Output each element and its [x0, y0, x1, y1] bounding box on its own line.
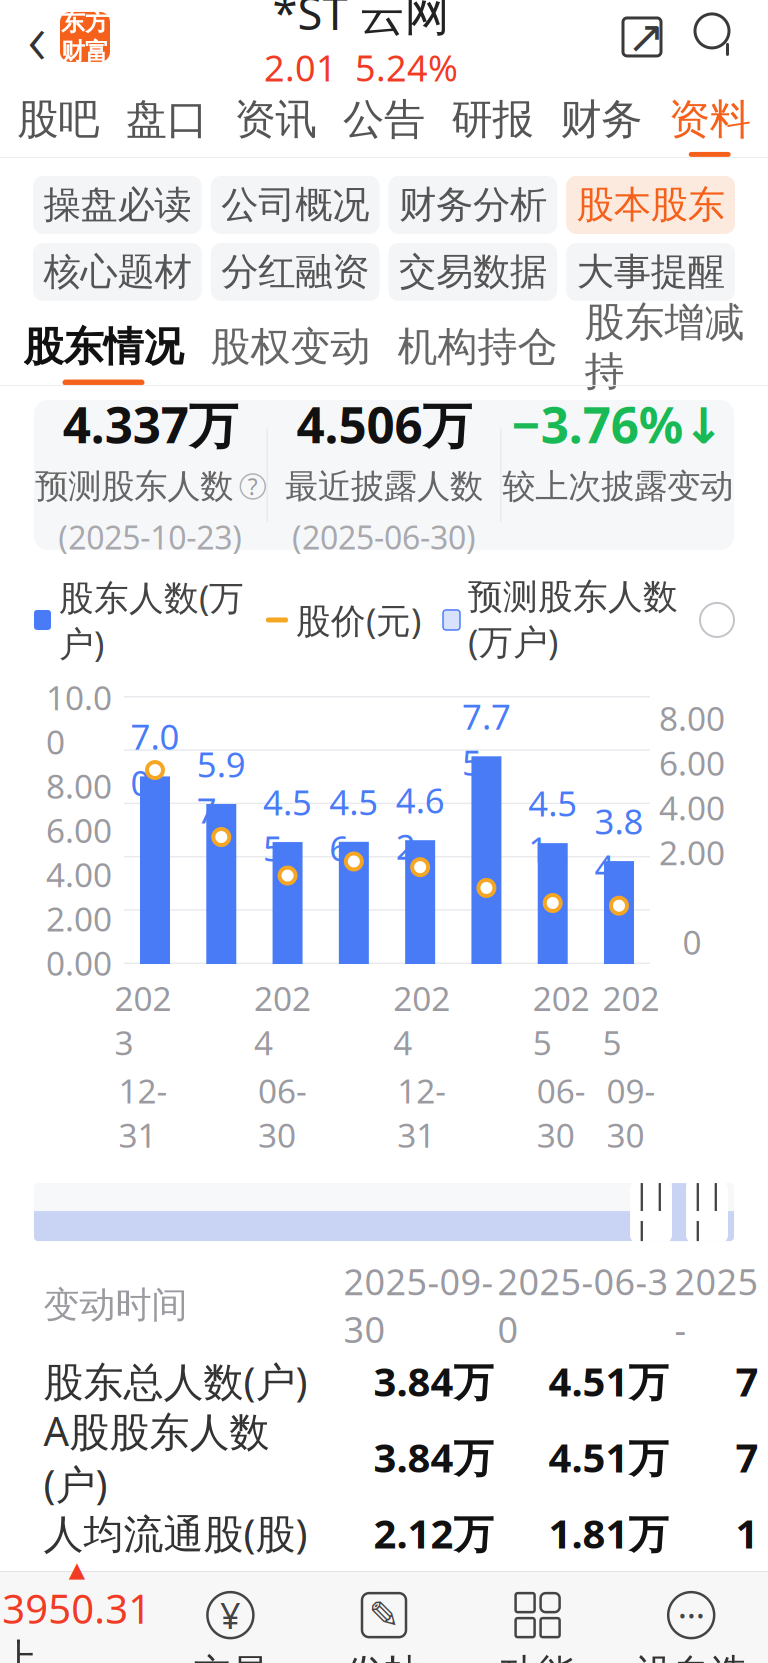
staticText: *ST 云网 [272, 0, 449, 43]
button[interactable]: ¥ [154, 1588, 307, 1663]
staticText: 研报 [452, 94, 534, 145]
button[interactable]: Adjust chart range [630, 1181, 672, 1243]
button[interactable]: 财务 [547, 81, 655, 157]
staticText: ✎ [368, 1594, 399, 1636]
staticText: 8.00 [46, 764, 112, 808]
staticText: (2025-10-23) [58, 516, 242, 558]
button[interactable]: 功能 [461, 1588, 614, 1663]
button[interactable]: 大事提醒 [566, 243, 735, 301]
staticText: 公告 [343, 94, 425, 145]
button[interactable]: 股东增减持 [571, 315, 758, 385]
staticText: 8.00 [659, 696, 725, 740]
staticText: 4.51 [528, 780, 577, 872]
staticText: 核心题材 [43, 249, 191, 295]
staticText: 09-30 [606, 1068, 655, 1157]
button[interactable]: 资讯 [221, 81, 330, 157]
staticText: 2023 [114, 976, 171, 1064]
button[interactable]: East Money [60, 12, 110, 62]
staticText: −3.76%↓ [512, 391, 724, 457]
staticText: 1.81万 [548, 1506, 668, 1560]
button[interactable]: 分红融资 [211, 243, 380, 301]
button[interactable]: ▲ [0, 1557, 154, 1663]
staticText: 股东总人数(户) [43, 1354, 307, 1408]
staticText: 2025 [533, 976, 590, 1064]
staticText: 财务 [560, 94, 642, 145]
button[interactable]: ··· [614, 1588, 768, 1663]
staticText: 机构持仓 [397, 322, 557, 371]
button[interactable]: 财务分析 [388, 176, 557, 234]
staticText: 股权变动 [210, 322, 370, 371]
staticText: 资料 [669, 94, 751, 145]
staticText: ||| [689, 1170, 725, 1255]
button[interactable]: 股本股东 [566, 176, 735, 234]
staticText: 12-31 [397, 1068, 446, 1157]
button[interactable]: 交易数据 [388, 243, 557, 301]
staticText: 预测股东人数(万户) [468, 576, 678, 664]
staticText: 上证 [0, 1635, 37, 1663]
staticText: 发帖 [347, 1650, 421, 1663]
staticText: 交易数据 [399, 249, 547, 295]
button[interactable]: ✎ [307, 1588, 461, 1663]
staticText: 4.55 [263, 779, 312, 871]
staticText: 操盘必读 [43, 182, 191, 228]
staticText: 7.75 [462, 693, 511, 785]
staticText: 4.56 [329, 779, 378, 871]
staticText: 股本股东 [577, 182, 725, 228]
staticText: 股东情况 [23, 322, 183, 371]
staticText: 6.00 [46, 808, 112, 852]
button[interactable]: 机构持仓 [384, 315, 571, 385]
staticText: 分红融资 [221, 249, 369, 295]
button[interactable]: 公告 [330, 81, 438, 157]
staticText: 7 [735, 1430, 758, 1484]
button[interactable]: 盘口 [113, 81, 221, 157]
staticText: 股吧 [17, 94, 99, 145]
staticText: 东方 [61, 7, 109, 37]
staticText: 2024 [254, 976, 311, 1064]
staticText: 06-30 [537, 1068, 586, 1157]
staticText: 2.01 5.24% [264, 44, 458, 91]
staticText: 最近披露人数 [285, 466, 483, 507]
staticText: 2.12万 [373, 1506, 493, 1560]
staticText: 交易 [193, 1650, 267, 1663]
staticText: 2.00 [46, 896, 112, 941]
staticText: 5.97 [197, 741, 246, 833]
button[interactable]: 股吧 [4, 81, 113, 157]
staticText: 较上次披露变动 [502, 466, 733, 507]
button[interactable]: Adjust chart range [686, 1181, 728, 1243]
staticText: 4.506万 [296, 391, 471, 457]
staticText: 6.00 [659, 741, 725, 785]
button[interactable]: 核心题材 [33, 243, 202, 301]
button[interactable]: Search [672, 7, 742, 67]
staticText: A股股东人数(户) [43, 1404, 269, 1510]
staticText: 12-31 [118, 1068, 167, 1157]
button[interactable]: Back [14, 2, 60, 72]
staticText: 股价(元) [296, 597, 421, 643]
staticText: 预测股东人数 [35, 466, 233, 507]
button[interactable]: 操盘必读 [33, 176, 202, 234]
staticText: 公司概况 [221, 182, 369, 228]
button[interactable]: 股权变动 [197, 315, 384, 385]
staticText [614, 516, 622, 558]
button[interactable]: 研报 [438, 81, 547, 157]
staticText: 7.00 [130, 713, 179, 805]
staticText: ▲ [69, 1557, 85, 1582]
staticText: 设自选 [636, 1650, 747, 1663]
staticText: 4.00 [46, 852, 112, 896]
staticText: 3.84 [594, 798, 643, 890]
staticText: 2025-09-30 [343, 1257, 493, 1353]
staticText: 4.51万 [548, 1354, 668, 1408]
staticText: 0.00 [46, 941, 112, 985]
staticText: ··· [678, 1592, 705, 1638]
staticText: 10.00 [46, 675, 112, 764]
staticText: 4.00 [659, 785, 725, 830]
button[interactable]: 资料 [655, 81, 764, 157]
button[interactable]: Share [612, 7, 672, 67]
button[interactable]: 股东情况 [10, 315, 197, 385]
staticText: 大事提醒 [577, 249, 725, 295]
staticText: 7 [735, 1354, 758, 1408]
staticText: 财务分析 [399, 182, 547, 228]
button[interactable]: 公司概况 [211, 176, 380, 234]
staticText: 盘口 [126, 94, 208, 145]
